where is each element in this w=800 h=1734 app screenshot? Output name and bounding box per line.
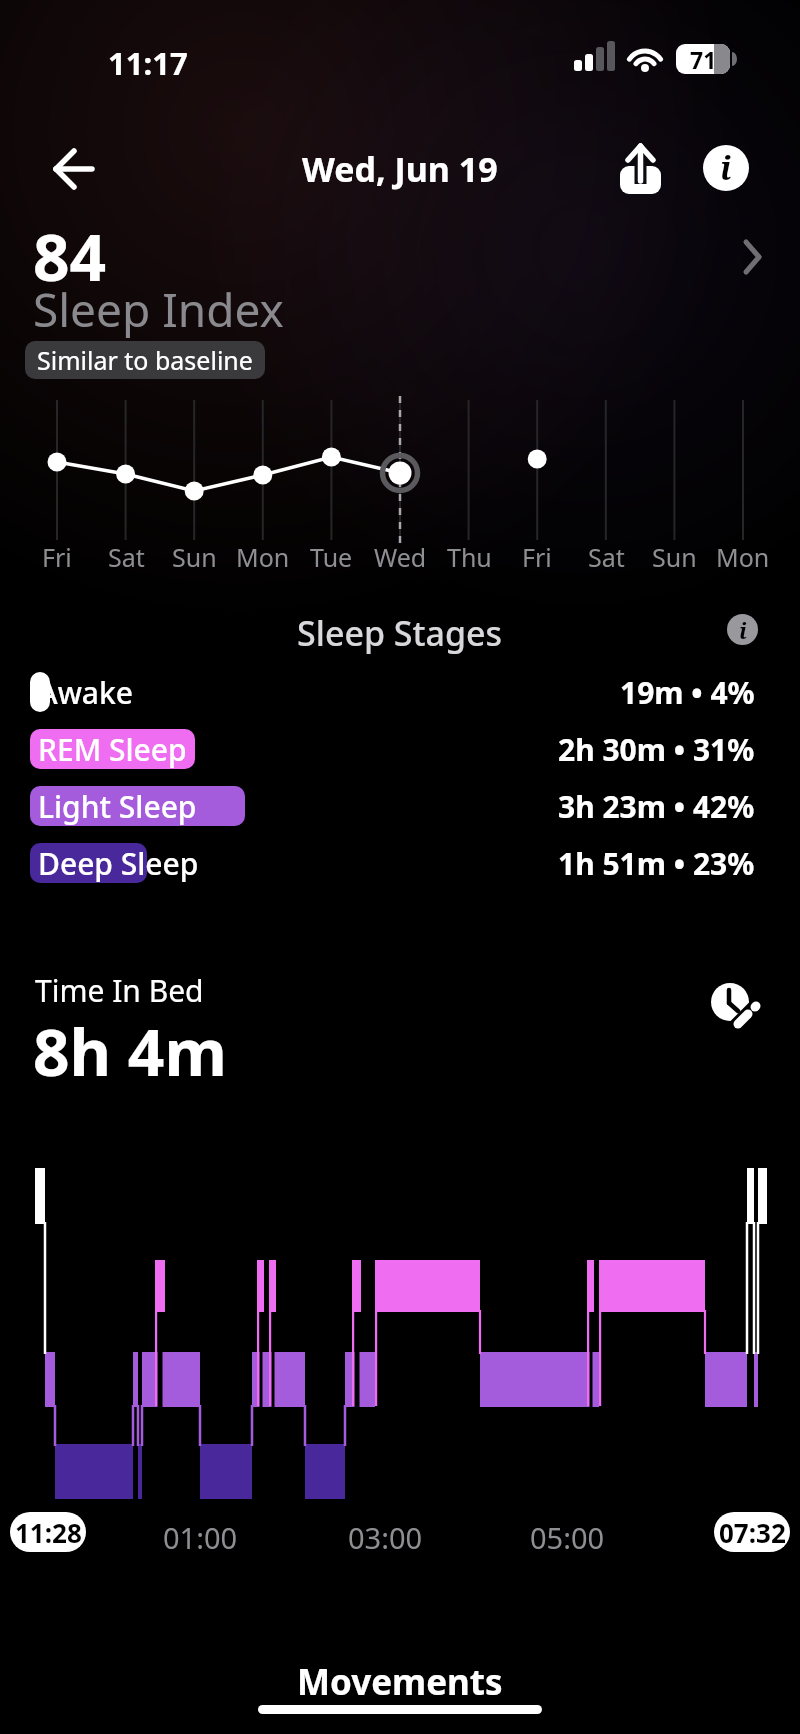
button[interactable]: Movements	[297, 1658, 503, 1706]
staticText: Thu	[447, 540, 492, 574]
staticText: 01:00	[163, 1518, 238, 1557]
staticText: Mon	[716, 540, 770, 574]
button[interactable]: i	[703, 145, 749, 191]
staticText: 3h 23m • 42%	[558, 786, 755, 826]
button[interactable]	[612, 136, 670, 198]
staticText: Deep Sleep	[38, 843, 199, 883]
staticText: Light Sleep	[38, 786, 197, 826]
staticText: Sun	[172, 540, 217, 574]
staticText: i	[739, 615, 747, 645]
staticText: Mon	[236, 540, 290, 574]
staticText: i	[720, 146, 732, 190]
staticText: Similar to baseline	[37, 343, 253, 377]
staticText: Fri	[522, 540, 552, 574]
staticText: 8h 4m	[33, 1008, 227, 1095]
staticText: 03:00	[348, 1518, 423, 1557]
staticText: 84	[33, 213, 107, 300]
button[interactable]: i	[727, 614, 758, 645]
button[interactable]	[740, 238, 770, 278]
staticText: Sleep Stages	[297, 610, 503, 656]
staticText: 11:17	[108, 42, 188, 84]
staticText: Sleep Index	[33, 278, 284, 341]
button[interactable]	[698, 970, 764, 1036]
staticText: Tue	[310, 540, 353, 574]
staticText: 71	[690, 44, 717, 74]
staticText: 05:00	[530, 1518, 605, 1557]
staticText: 2h 30m • 31%	[558, 729, 755, 769]
staticText: 11:28	[15, 1515, 82, 1550]
staticText: REM Sleep	[38, 729, 187, 769]
staticText: 19m • 4%	[620, 672, 755, 712]
staticText: Wed	[374, 540, 427, 574]
staticText: 1h 51m • 23%	[558, 843, 755, 883]
staticText: 07:32	[719, 1515, 786, 1550]
staticText: Sun	[652, 540, 697, 574]
staticText: Sat	[108, 540, 145, 574]
staticText: Time In Bed	[35, 970, 204, 1011]
staticText: Wed, Jun 19	[302, 146, 498, 192]
staticText: Sat	[588, 540, 625, 574]
staticText: Awake	[38, 672, 134, 712]
staticText: Fri	[42, 540, 72, 574]
button[interactable]	[48, 142, 100, 194]
staticText: Movements	[297, 1658, 503, 1706]
